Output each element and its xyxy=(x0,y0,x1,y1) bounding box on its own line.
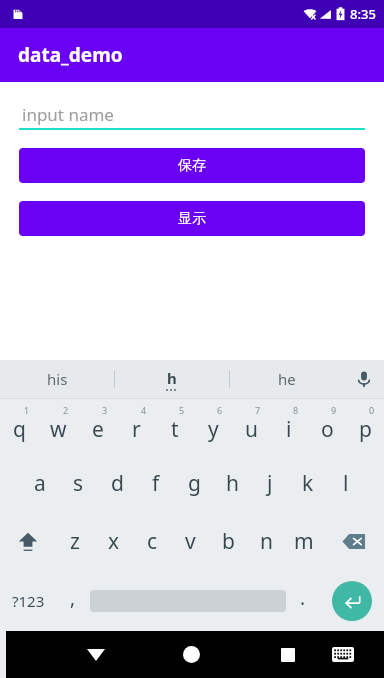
button[interactable]: l xyxy=(327,454,365,512)
staticText: his xyxy=(47,369,68,389)
button[interactable]: f xyxy=(137,454,175,512)
staticText: n xyxy=(260,527,273,556)
staticText: y xyxy=(208,415,219,444)
button[interactable]: he xyxy=(230,360,344,398)
button[interactable]: 9 xyxy=(308,399,346,454)
staticText: 4 xyxy=(141,404,147,416)
button[interactable]: s xyxy=(59,454,98,512)
button[interactable]: x xyxy=(94,512,133,570)
staticText: m xyxy=(294,527,314,556)
staticText: 8 xyxy=(293,404,299,416)
button[interactable]: v xyxy=(171,512,209,570)
button[interactable]: Space xyxy=(90,582,286,619)
staticText: 0 xyxy=(369,404,375,416)
staticText: h xyxy=(226,469,239,498)
button[interactable]: Switch keyboard xyxy=(315,631,370,678)
staticText: u xyxy=(245,415,258,444)
staticText: 9 xyxy=(331,404,337,416)
staticText: 3 xyxy=(102,404,108,416)
staticText: s xyxy=(73,469,84,498)
staticText: h xyxy=(167,368,177,388)
button[interactable]: 显示 xyxy=(19,201,365,236)
button[interactable]: Recent apps xyxy=(260,631,315,678)
staticText: i xyxy=(286,415,292,444)
staticText: . xyxy=(300,585,306,611)
button[interactable]: Backspace xyxy=(323,512,384,570)
staticText: 5 xyxy=(179,404,185,416)
staticText: , xyxy=(70,585,76,611)
staticText: a xyxy=(34,469,46,498)
staticText: f xyxy=(152,469,160,498)
button[interactable]: Shift xyxy=(0,512,55,570)
staticText: v xyxy=(185,527,196,556)
button[interactable]: j xyxy=(251,454,289,512)
button[interactable]: 8 xyxy=(270,399,308,454)
staticText: w xyxy=(50,415,67,444)
button[interactable]: 1 xyxy=(0,399,39,454)
button[interactable]: n xyxy=(247,512,285,570)
button[interactable]: c xyxy=(133,512,171,570)
staticText: g xyxy=(188,469,201,498)
staticText: 保存 xyxy=(178,157,206,175)
button[interactable]: 2 xyxy=(39,399,78,454)
button[interactable]: b xyxy=(209,512,247,570)
staticText: 2 xyxy=(63,404,69,416)
button[interactable]: 保存 xyxy=(19,148,365,183)
staticText: r xyxy=(132,415,141,444)
button[interactable]: m xyxy=(285,512,323,570)
button[interactable]: a xyxy=(20,454,59,512)
staticText: 6 xyxy=(217,404,223,416)
button[interactable]: Back xyxy=(68,631,123,678)
staticText: o xyxy=(321,415,334,444)
staticText: j xyxy=(267,469,273,498)
button[interactable]: 6 xyxy=(194,399,232,454)
staticText: p xyxy=(359,415,372,444)
button[interactable]: 0 xyxy=(346,399,384,454)
button[interactable]: 7 xyxy=(232,399,270,454)
staticText: t xyxy=(171,415,179,444)
staticText: c xyxy=(147,527,158,556)
button[interactable]: 5 xyxy=(156,399,194,454)
button[interactable]: g xyxy=(175,454,213,512)
staticText: x xyxy=(108,527,120,556)
button[interactable]: 4 xyxy=(117,399,156,454)
button[interactable]: Voice input xyxy=(344,360,384,398)
button[interactable]: h xyxy=(213,454,251,512)
button[interactable]: input name xyxy=(19,100,365,128)
button[interactable]: , xyxy=(56,570,90,631)
staticText: ?123 xyxy=(12,591,45,611)
staticText: d xyxy=(111,469,124,498)
staticText: k xyxy=(302,469,314,498)
staticText: 显示 xyxy=(178,210,206,228)
staticText: l xyxy=(343,469,349,498)
staticText: data_demo xyxy=(18,42,123,68)
button[interactable]: Home xyxy=(164,631,219,678)
button[interactable]: his xyxy=(0,360,114,398)
staticText: 7 xyxy=(255,404,261,416)
staticText: b xyxy=(222,527,235,556)
staticText: z xyxy=(70,527,80,556)
staticText: he xyxy=(278,369,296,389)
button[interactable]: Enter xyxy=(332,581,372,621)
staticText: 8:35 xyxy=(350,5,376,23)
button[interactable]: . xyxy=(286,570,320,631)
button[interactable]: k xyxy=(289,454,327,512)
staticText: q xyxy=(13,415,26,444)
button[interactable]: 3 xyxy=(78,399,117,454)
staticText: input name xyxy=(22,103,114,126)
button[interactable]: z xyxy=(55,512,94,570)
button[interactable]: ?123 xyxy=(0,570,56,631)
button[interactable]: d xyxy=(98,454,137,512)
staticText: e xyxy=(92,415,104,444)
staticText: 1 xyxy=(24,404,30,416)
button[interactable]: h xyxy=(115,360,229,398)
